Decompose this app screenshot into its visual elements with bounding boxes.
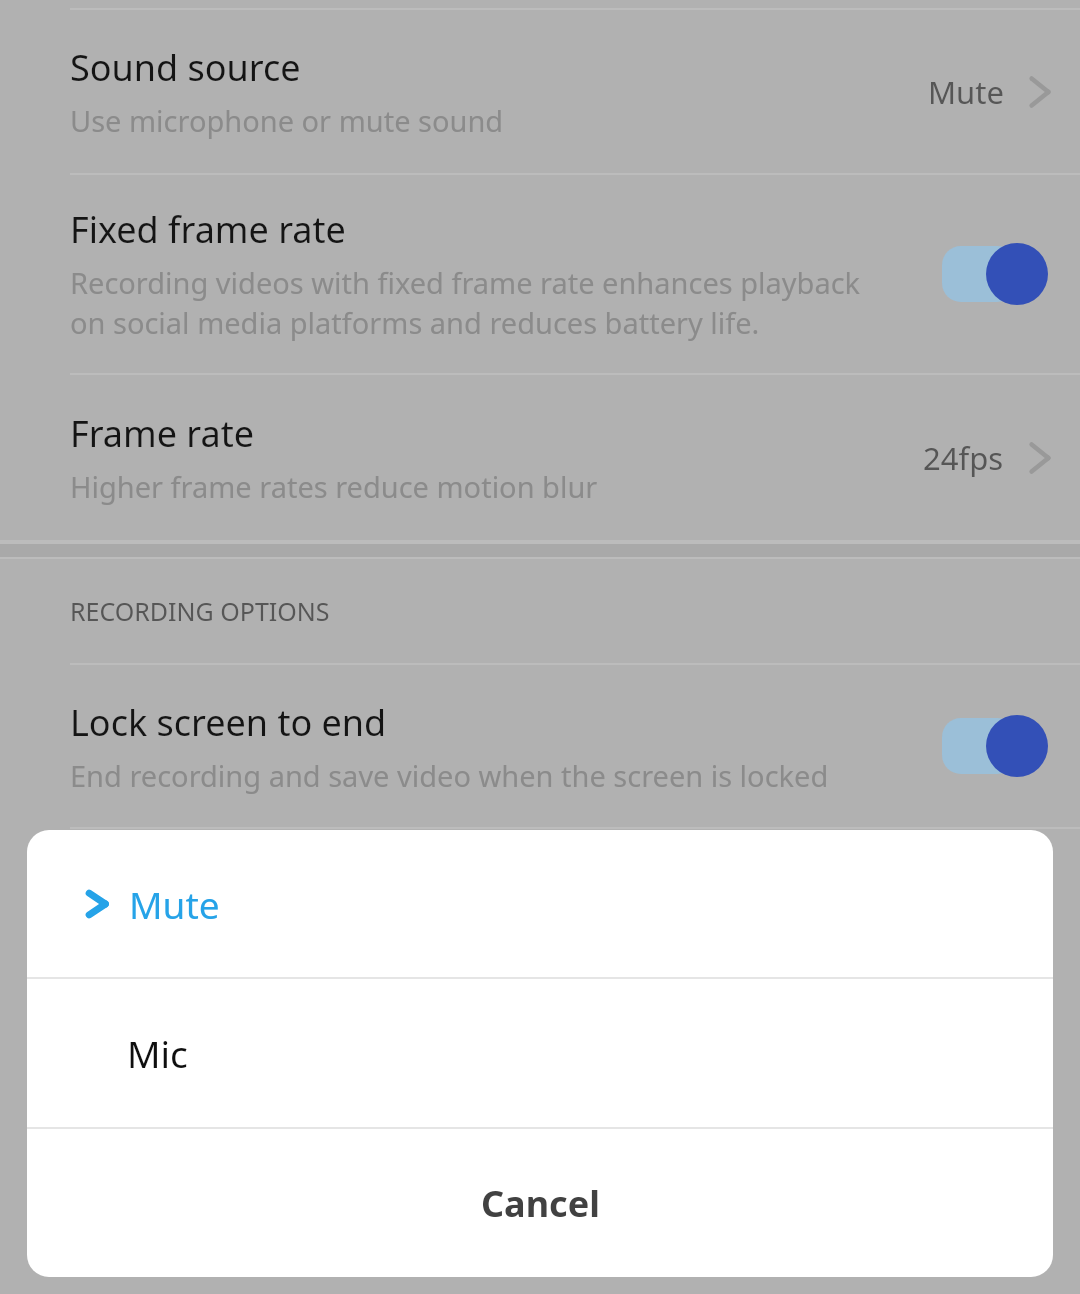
button[interactable]: Lock screen to end: [0, 665, 1080, 827]
staticText: Fixed frame rate: [70, 205, 346, 254]
staticText: Higher frame rates reduce motion blur: [70, 467, 598, 506]
staticText: Recording videos with fixed frame rate e…: [70, 263, 861, 343]
staticText: Mute: [129, 879, 220, 929]
staticText: End recording and save video when the sc…: [70, 756, 829, 795]
staticText: Mic: [127, 1028, 188, 1078]
button[interactable]: Toggle switch, on: [942, 714, 1052, 778]
staticText: Mute: [928, 71, 1004, 113]
button[interactable]: Mute: [27, 830, 1053, 977]
button[interactable]: Toggle switch, on: [942, 242, 1052, 306]
button[interactable]: Sound source: [0, 10, 1080, 173]
staticText: Lock screen to end: [70, 698, 387, 747]
button[interactable]: Mic: [27, 979, 1053, 1127]
staticText: Open Screen recorder's start page after …: [70, 887, 873, 926]
staticText: Sound source: [70, 43, 301, 92]
staticText: 24fps: [923, 437, 1004, 479]
staticText: Use microphone or mute sound: [70, 101, 504, 140]
button[interactable]: Cancel: [27, 1129, 1053, 1277]
button[interactable]: Fixed frame rate: [0, 175, 1080, 373]
staticText: Frame rate: [70, 409, 254, 458]
button[interactable]: Frame rate: [0, 375, 1080, 540]
staticText: RECORDING OPTIONS: [70, 594, 330, 628]
staticText: Cancel: [481, 1179, 600, 1228]
